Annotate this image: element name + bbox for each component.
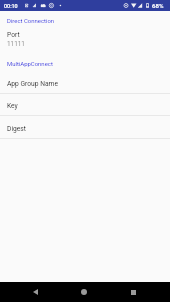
button[interactable]: Home — [74, 282, 94, 302]
button[interactable]: Recent apps — [123, 282, 143, 302]
button[interactable]: Digest — [0, 116, 170, 139]
staticText: Port — [7, 31, 20, 39]
staticText: 00:10 — [4, 3, 18, 9]
staticText: Key — [7, 102, 18, 110]
button[interactable]: Back — [25, 282, 45, 302]
button[interactable]: Port — [0, 27, 170, 49]
button[interactable]: App Group Name — [0, 71, 170, 94]
staticText: 68% — [152, 2, 164, 9]
staticText: MultiAppConnect — [7, 60, 53, 67]
staticText: Digest — [7, 125, 26, 133]
staticText: 11111 — [7, 40, 25, 48]
button[interactable]: Key — [0, 94, 170, 116]
staticText: Direct Connection — [7, 17, 55, 24]
staticText: App Group Name — [7, 80, 59, 88]
